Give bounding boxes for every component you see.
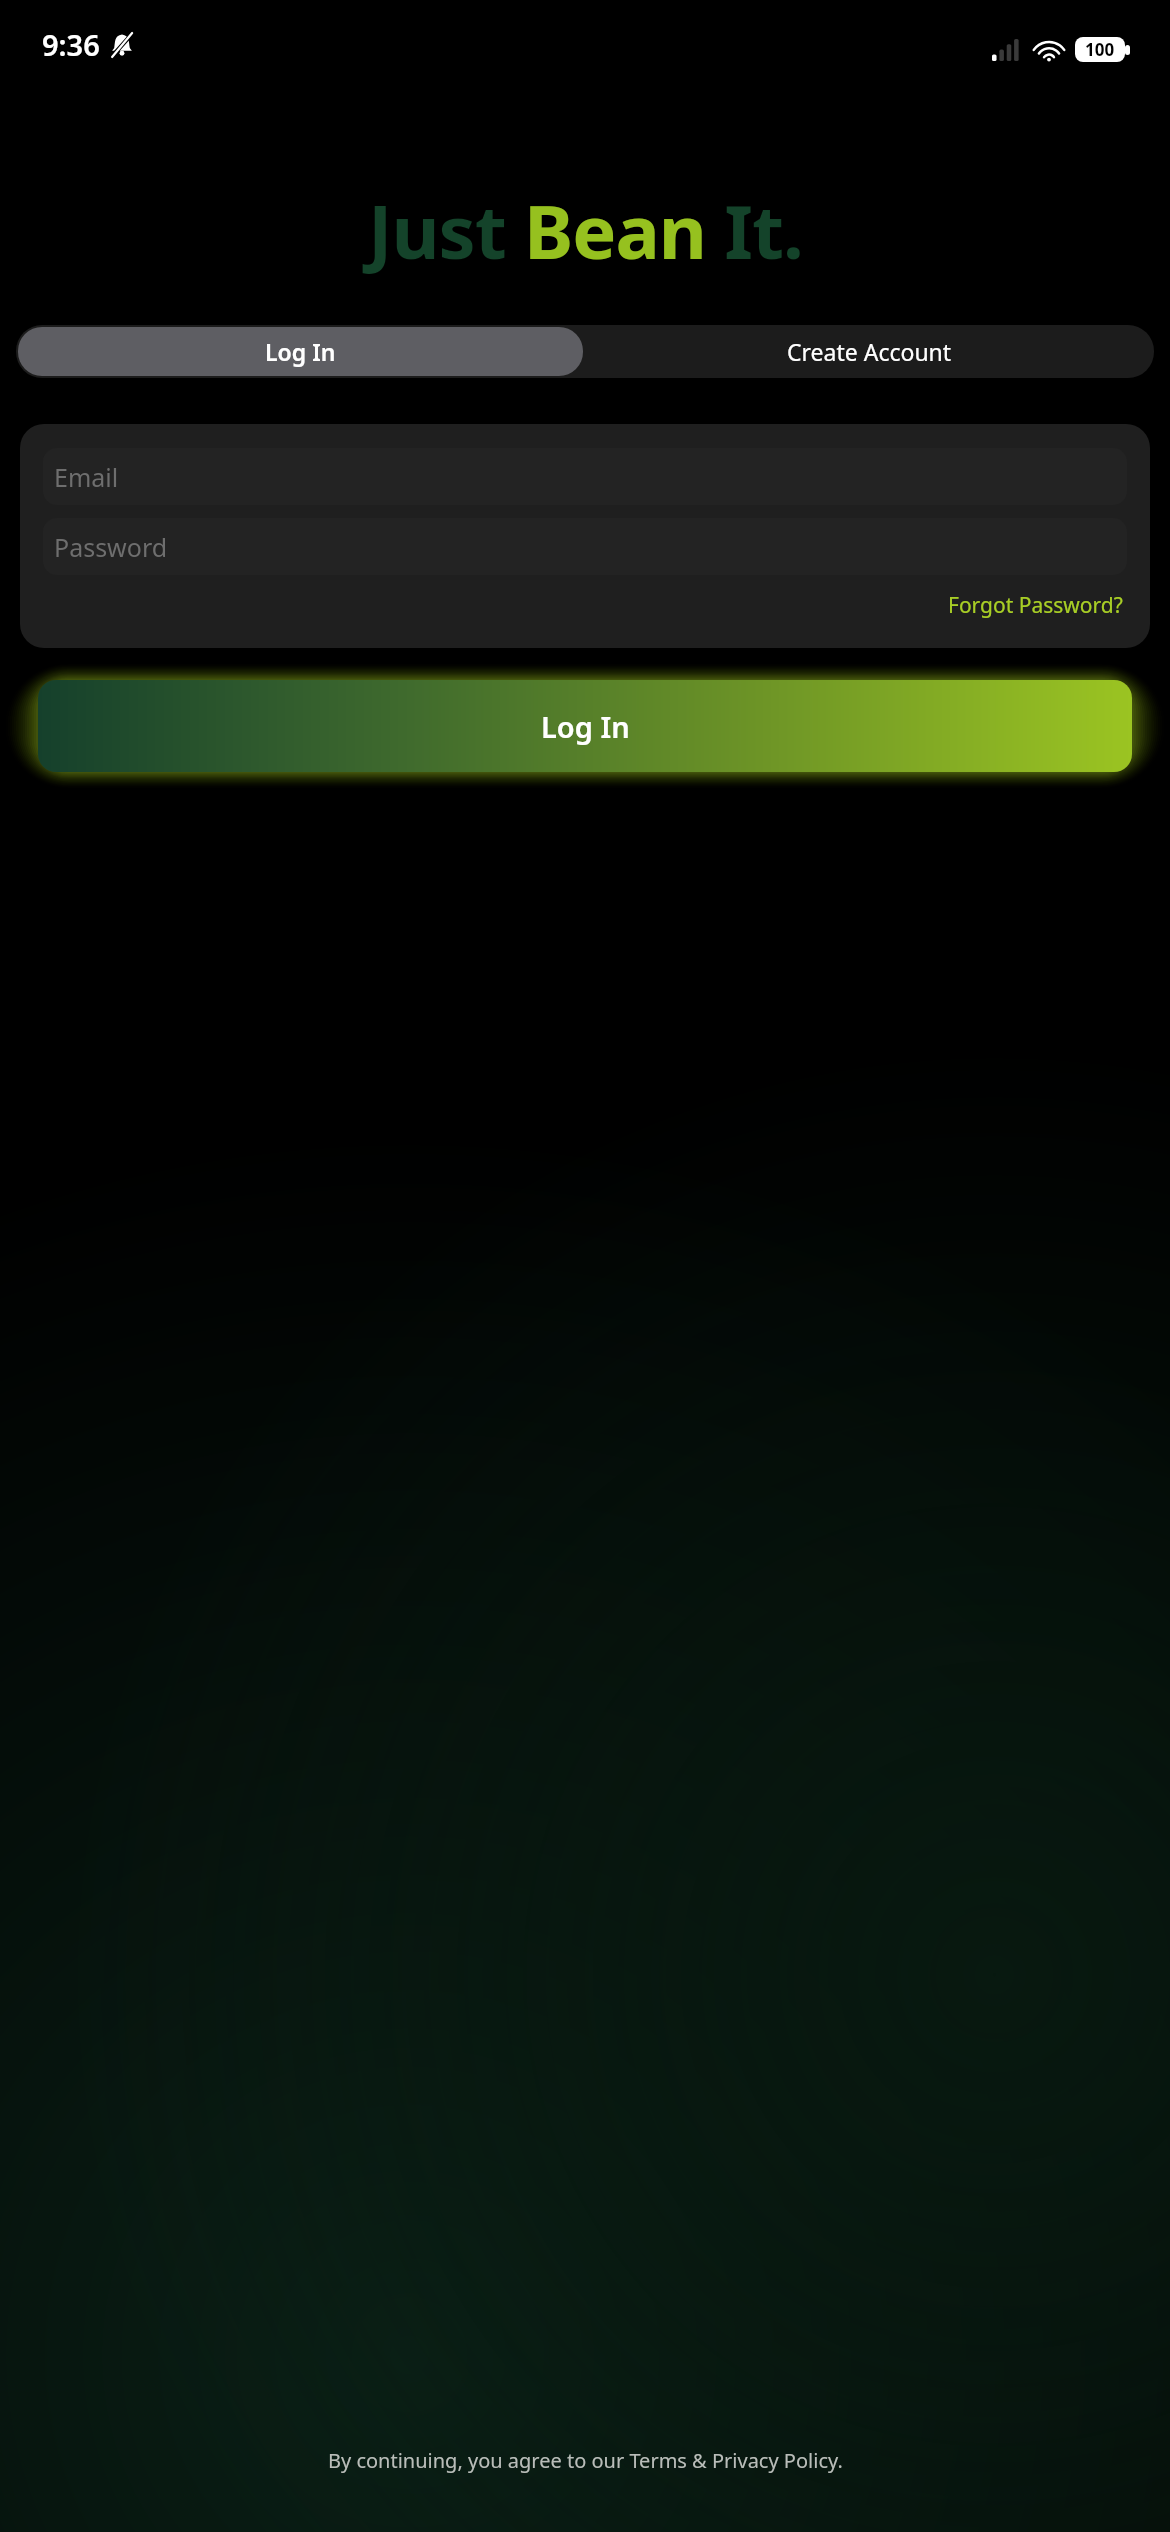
staticText: Password: [54, 530, 168, 564]
staticText: Just Bean It.: [368, 180, 803, 281]
button[interactable]: Create Account: [585, 325, 1154, 378]
staticText: Create Account: [787, 336, 952, 367]
staticText: 100: [1085, 38, 1115, 61]
button[interactable]: Log In: [18, 327, 583, 376]
staticText: 9:36: [42, 25, 100, 64]
staticText: By continuing, you agree to our Terms & …: [328, 2447, 843, 2474]
staticText: Email: [54, 460, 119, 494]
button[interactable]: By continuing, you agree to our Terms & …: [0, 2441, 1170, 2480]
button[interactable]: Forgot Password?: [944, 587, 1127, 624]
staticText: Log In: [541, 707, 630, 746]
button[interactable]: Password: [43, 518, 1127, 575]
button[interactable]: Email: [43, 448, 1127, 505]
button[interactable]: Log In: [38, 680, 1132, 772]
staticText: Log In: [265, 336, 336, 367]
staticText: Forgot Password?: [948, 591, 1123, 620]
